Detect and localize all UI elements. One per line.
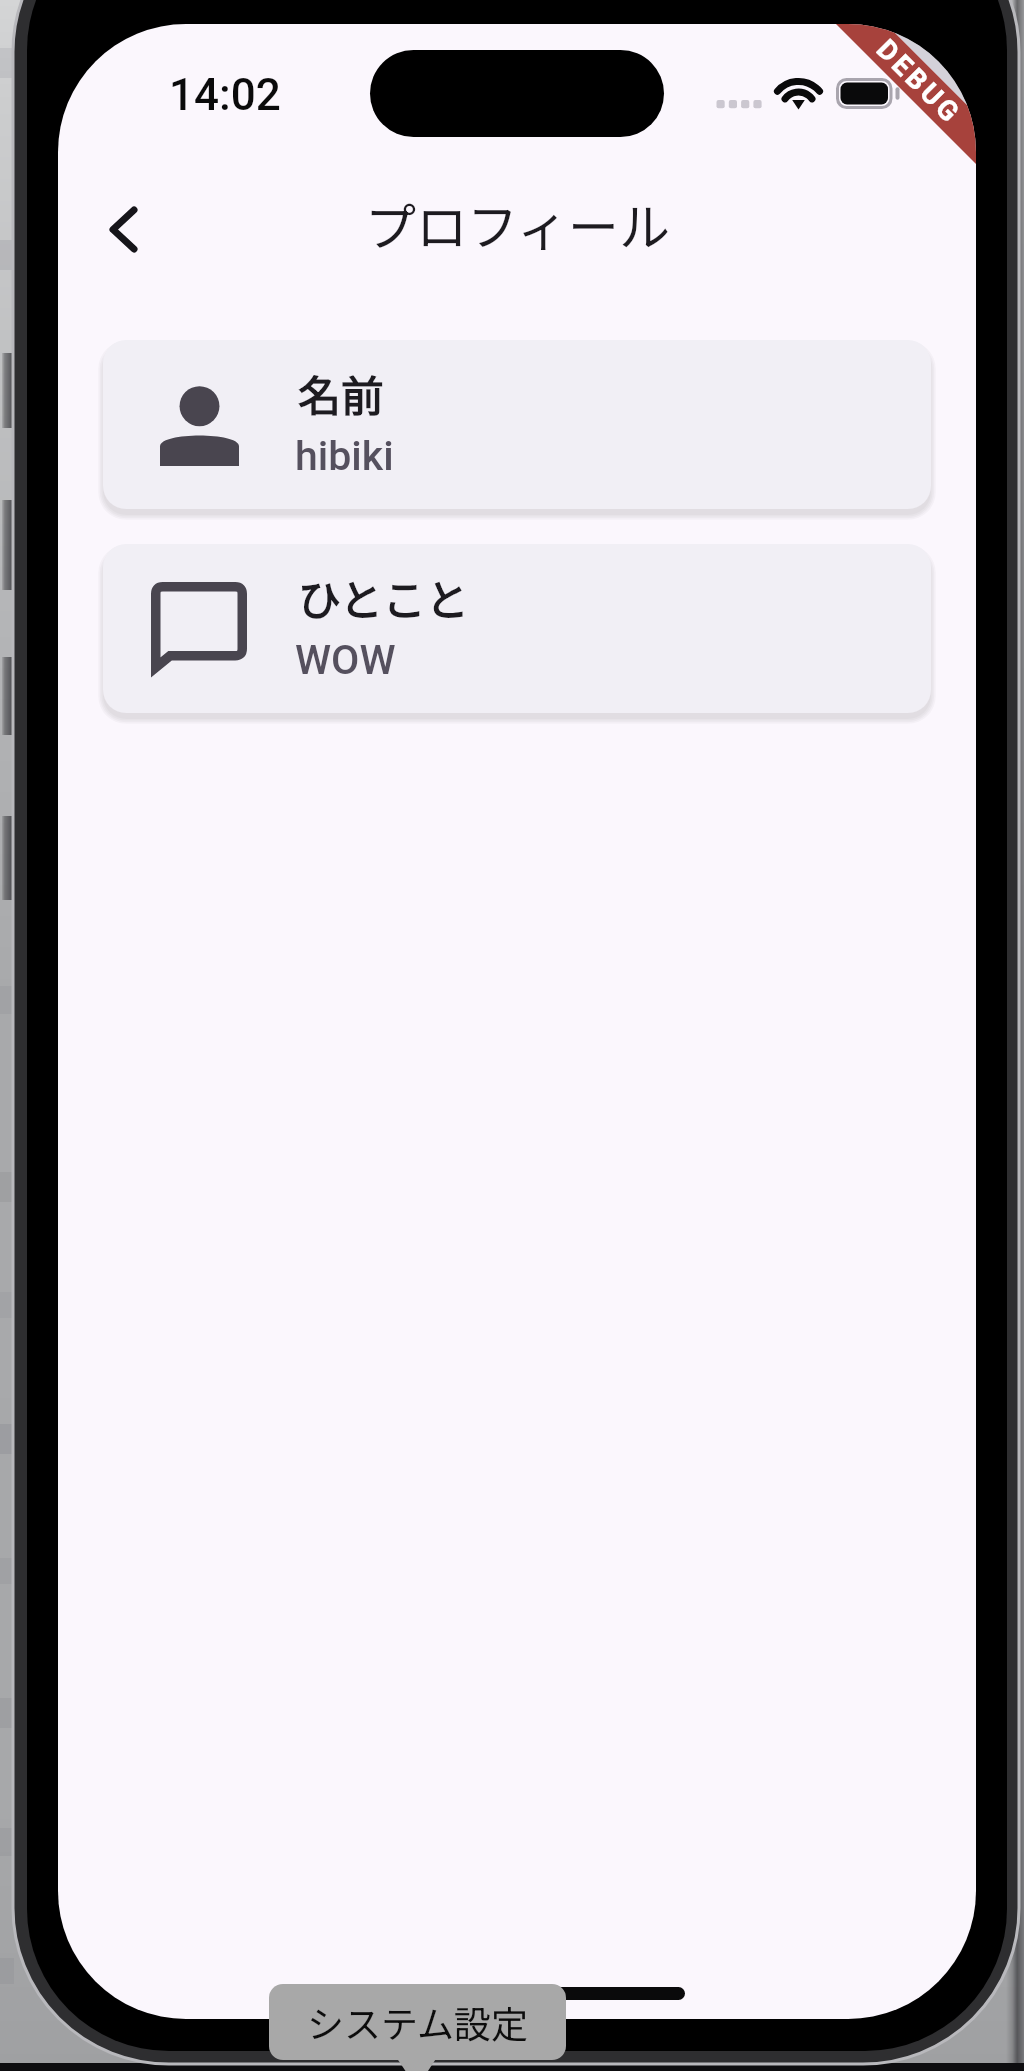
button[interactable]: ひとこと bbox=[103, 544, 931, 713]
staticText: hibiki bbox=[295, 432, 394, 480]
staticText: 14:02 bbox=[169, 69, 281, 121]
staticText: 名前 bbox=[298, 362, 384, 424]
staticText: ひとこと bbox=[298, 566, 469, 628]
button[interactable]: Back bbox=[73, 179, 173, 279]
button[interactable]: 名前 bbox=[103, 340, 931, 509]
staticText: WOW bbox=[295, 636, 396, 684]
button[interactable]: システム設定 bbox=[269, 1984, 566, 2060]
staticText: DEBUG bbox=[870, 33, 968, 131]
staticText: プロフィール bbox=[365, 187, 670, 261]
staticText: システム設定 bbox=[307, 1995, 528, 2049]
